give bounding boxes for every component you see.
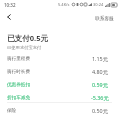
button[interactable]: 保险 (0, 104, 120, 117)
button[interactable]: 联系客服 (92, 13, 117, 23)
staticText: 30:24 (93, 2, 104, 7)
staticText: 骑行时长费 (7, 69, 30, 75)
button[interactable]: 优惠券抵扣 (0, 78, 120, 91)
staticText: 4.80元 (92, 68, 109, 75)
staticText: 1.15元 (92, 55, 109, 62)
staticText: 联系客服 (95, 15, 114, 21)
button[interactable]: 骑行时长费 (0, 65, 120, 78)
staticText: 折扣车减免 (7, 95, 30, 101)
staticText: 优惠券抵扣 (7, 82, 30, 88)
staticText: 10:32 (4, 2, 16, 8)
staticText: 0.59元 (92, 81, 109, 88)
button[interactable]: 折扣车减免 (0, 91, 120, 104)
button[interactable]: 骑行里程费 (0, 52, 120, 65)
staticText: 已支付0.5元 (7, 33, 49, 43)
staticText: 保险 (7, 108, 17, 114)
button[interactable]: Back (3, 11, 15, 23)
staticText: 5.4K/s (58, 2, 70, 7)
staticText: -5.36元 (91, 94, 109, 101)
staticText: 骑行里程费 (7, 56, 30, 62)
staticText: 已使用支付宝支付 (7, 45, 42, 50)
staticText: 0.50元 (92, 107, 109, 114)
